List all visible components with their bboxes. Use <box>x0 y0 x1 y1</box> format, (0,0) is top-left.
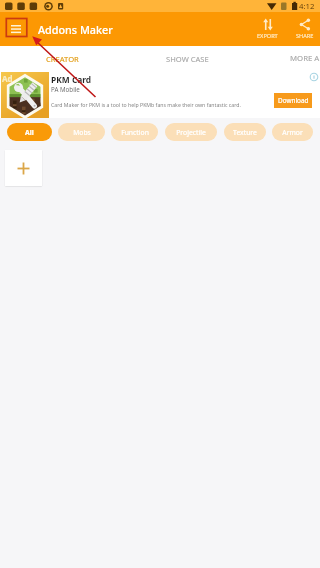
staticText: SHOW CASE <box>166 54 209 64</box>
button[interactable]: EXPORT <box>256 18 279 40</box>
button[interactable]: Create new addon <box>5 150 42 186</box>
staticText: Armor <box>282 128 303 137</box>
button[interactable]: Mobs <box>58 123 105 141</box>
button[interactable]: SHOW CASE <box>125 46 249 71</box>
button[interactable]: Texture <box>224 123 266 141</box>
staticText: Download <box>278 96 309 105</box>
button[interactable]: All <box>7 123 52 141</box>
staticText: Function <box>121 128 149 137</box>
staticText: Mobs <box>73 128 91 137</box>
staticText: Projectile <box>176 128 206 137</box>
button[interactable]: CREATOR <box>0 46 125 71</box>
staticText: Ad <box>2 73 13 84</box>
staticText: MORE APPS <box>290 53 320 64</box>
staticText: All <box>25 128 34 137</box>
button[interactable]: SHARE <box>295 18 315 40</box>
button[interactable]: Function <box>111 123 158 141</box>
staticText: EXPORT <box>257 32 278 40</box>
staticText: PKM Card <box>51 74 92 85</box>
button[interactable]: Download <box>274 93 312 108</box>
staticText: Addons Maker <box>38 22 113 37</box>
staticText: SHARE <box>296 32 314 40</box>
button[interactable]: MORE APPS <box>249 46 320 71</box>
button[interactable]: Ad choices info <box>309 72 319 82</box>
staticText: Texture <box>233 128 257 137</box>
staticText: CREATOR <box>46 54 79 64</box>
staticText: PA Mobile <box>51 85 80 93</box>
staticText: 4:12 <box>299 1 315 12</box>
staticText: Card Maker for PKM is a tool to help PKM… <box>51 101 241 108</box>
button[interactable]: Armor <box>272 123 313 141</box>
button[interactable]: Open navigation menu <box>6 20 26 38</box>
button[interactable]: Projectile <box>165 123 217 141</box>
